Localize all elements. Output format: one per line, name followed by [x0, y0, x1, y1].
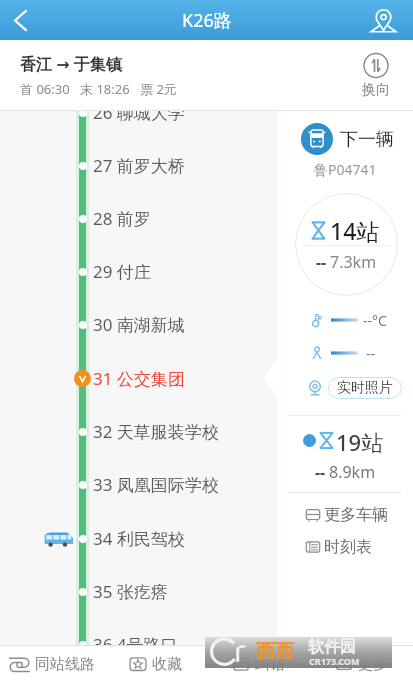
staticText: 票 2元	[140, 80, 177, 98]
staticText: 软件园	[308, 637, 356, 657]
staticText: 实时照片	[337, 379, 393, 397]
button[interactable]: 30 南湖新城	[0, 298, 277, 351]
staticText: CR173.COM	[309, 655, 360, 667]
button[interactable]: 更多车辆	[305, 504, 388, 526]
button[interactable]: 34 利民驾校	[0, 512, 277, 565]
button[interactable]: 35 张疙瘩	[0, 565, 277, 618]
button[interactable]: 26 聊城大学	[0, 111, 277, 139]
staticText: 西西	[256, 640, 294, 664]
staticText: 31 公交集团	[93, 367, 185, 390]
button[interactable]: 33 凤凰国际学校	[0, 458, 277, 511]
button[interactable]: 更多	[310, 646, 413, 682]
button[interactable]: Back	[0, 0, 40, 40]
button[interactable]: 收藏	[104, 646, 207, 682]
staticText: 32 天草服装学校	[93, 420, 219, 443]
staticText: 29 付庄	[93, 260, 151, 283]
button[interactable]: 28 前罗	[0, 192, 277, 245]
staticText: 换向	[362, 81, 390, 99]
staticText: 19站	[336, 427, 384, 453]
staticText: --	[315, 461, 326, 483]
button[interactable]: 36 4号路口	[0, 618, 277, 646]
staticText: K26路	[182, 8, 232, 33]
staticText: 26 聊城大学	[93, 111, 185, 124]
button[interactable]: 32 天草服装学校	[0, 405, 277, 458]
staticText: 收藏	[152, 655, 182, 674]
staticText: 鲁P04741	[314, 160, 377, 179]
button[interactable]: Map	[363, 0, 403, 40]
button[interactable]: 实时照片	[328, 377, 402, 399]
staticText: 28 前罗	[93, 207, 151, 230]
staticText: 35 张疙瘩	[93, 580, 168, 603]
button[interactable]: 纠错	[207, 646, 310, 682]
staticText: 更多	[358, 655, 388, 674]
staticText: 香江 → 于集镇	[20, 53, 122, 75]
staticText: 34 利民驾校	[93, 527, 185, 550]
staticText: 7.3km	[330, 251, 377, 273]
staticText: 更多车辆	[324, 505, 388, 525]
button[interactable]: 下一辆	[301, 123, 394, 155]
staticText: 末 18:26	[80, 80, 130, 98]
staticText: 33 凤凰国际学校	[93, 473, 219, 496]
staticText: 14站	[330, 215, 380, 246]
button[interactable]: 同站线路	[0, 646, 104, 682]
button[interactable]: 换向	[361, 53, 391, 99]
staticText: 27 前罗大桥	[93, 154, 185, 177]
button[interactable]: 31 公交集团	[0, 352, 277, 405]
staticText: 30 南湖新城	[93, 313, 185, 336]
button[interactable]: 14站	[295, 193, 398, 296]
button[interactable]: 19站	[303, 427, 384, 453]
button[interactable]: 27 前罗大桥	[0, 139, 277, 192]
staticText: --	[316, 251, 327, 273]
staticText: 同站线路	[35, 655, 95, 674]
staticText: 36 4号路口	[93, 633, 178, 646]
staticText: 下一辆	[340, 128, 394, 151]
staticText: 纠错	[255, 655, 285, 674]
staticText: --	[366, 344, 376, 363]
staticText: 时刻表	[324, 537, 372, 557]
button[interactable]: 29 付庄	[0, 245, 277, 298]
staticText: 8.9km	[329, 461, 376, 483]
staticText: 首 06:30	[20, 80, 70, 98]
button[interactable]: 时刻表	[305, 536, 372, 558]
staticText: --°C	[363, 311, 387, 330]
